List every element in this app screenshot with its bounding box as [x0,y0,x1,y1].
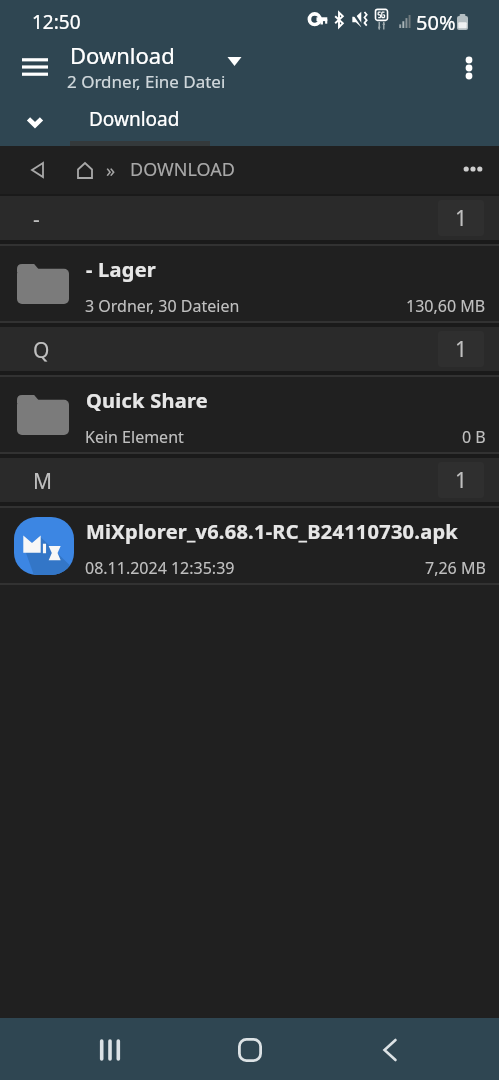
button[interactable]: Home [220,1030,280,1070]
staticText: Quick Share [86,387,208,414]
button[interactable]: Download [0,102,210,146]
staticText: Kein Element [85,426,184,448]
staticText: 1 [455,335,468,364]
staticText: Download [89,106,180,132]
button[interactable]: MiXplorer_v6.68.1-RC_B24110730.apk [0,508,499,583]
staticText: 1 [455,204,468,233]
staticText: 1 [455,466,468,495]
staticText: 3 Ordner, 30 Dateien [85,295,240,317]
staticText: MiXplorer_v6.68.1-RC_B24110730.apk [86,518,458,545]
button[interactable]: Up one level [20,150,60,190]
staticText: Download [70,40,175,70]
button[interactable]: Switch storage [219,45,250,76]
button[interactable]: Q [0,327,499,371]
staticText: M [33,467,53,496]
button[interactable]: Recent apps [80,1030,140,1070]
staticText: 50% [416,9,456,36]
button[interactable]: Navigation drawer [14,45,56,87]
button[interactable]: - [0,196,499,240]
staticText: - Lager [86,256,157,283]
button[interactable]: Home folder [68,154,102,188]
staticText: 7,26 MB [425,557,486,579]
staticText: Q [33,336,50,365]
staticText: 08.11.2024 12:35:39 [85,557,235,579]
staticText: 12:50 [32,9,81,35]
staticText: 0 B [462,426,486,448]
staticText: - [33,205,40,234]
staticText: » [106,158,116,183]
staticText: 130,60 MB [406,295,486,317]
button[interactable]: Back [357,1030,417,1070]
button[interactable]: More options [451,49,487,85]
staticText: 2 Ordner, Eine Datei [67,70,226,93]
button[interactable]: DOWNLOAD [130,157,235,182]
button[interactable]: Quick Share [0,377,499,452]
button[interactable]: Folder menu [453,149,493,189]
button[interactable]: - Lager [0,246,499,321]
button[interactable]: M [0,458,499,502]
